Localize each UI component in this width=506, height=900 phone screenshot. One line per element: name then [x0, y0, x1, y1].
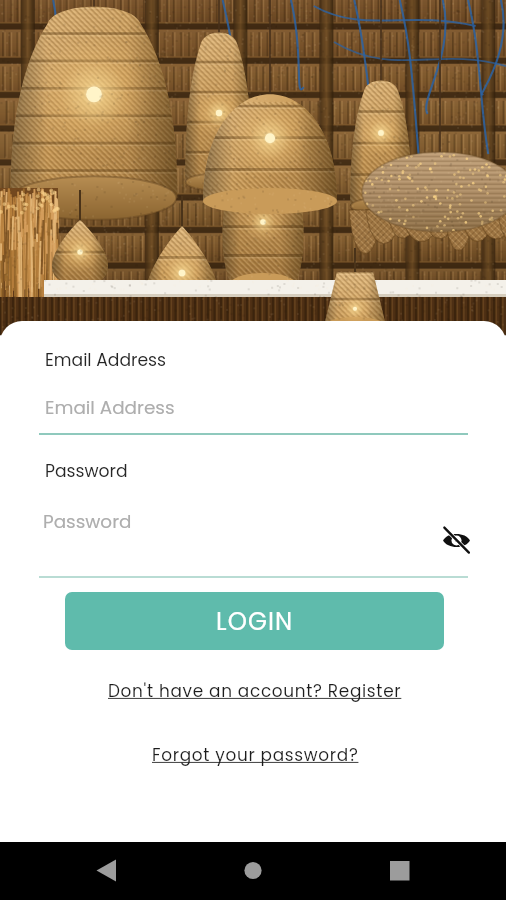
staticText: Email Address [45, 348, 167, 372]
staticText: Password [45, 459, 128, 483]
staticText: LOGIN [216, 604, 294, 638]
staticText: Password [43, 509, 132, 535]
button[interactable]: System navigation bar [0, 842, 506, 900]
button[interactable]: Don't have an account? Register [108, 679, 402, 703]
button[interactable]: Forgot your password? [152, 743, 359, 767]
staticText: Email Address [45, 395, 175, 421]
button[interactable]: LOGIN [65, 592, 444, 650]
button[interactable]: Show password [432, 516, 480, 564]
